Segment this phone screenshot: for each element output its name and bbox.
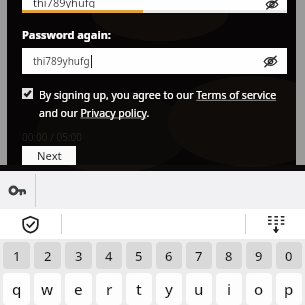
staticText: e: [74, 279, 83, 299]
staticText: 00:00 / 05:00: [22, 130, 83, 144]
staticText: 0: [285, 247, 293, 265]
button[interactable]: thi789yhufg: [22, 48, 287, 74]
staticText: 5: [135, 247, 143, 265]
staticText: 1: [13, 247, 21, 265]
staticText: w: [41, 279, 54, 299]
button[interactable]: 9: [246, 242, 272, 269]
button[interactable]: 3: [65, 242, 92, 269]
staticText: 3: [75, 247, 83, 265]
staticText: Next: [37, 148, 62, 163]
staticText: t: [136, 279, 142, 299]
button[interactable]: Agree to terms checkbox: [22, 88, 33, 99]
button[interactable]: r: [96, 273, 122, 305]
button[interactable]: i: [216, 273, 242, 305]
button[interactable]: Next: [22, 146, 76, 165]
staticText: 2: [44, 247, 52, 265]
button[interactable]: u: [186, 273, 212, 305]
staticText: 7: [195, 247, 203, 265]
button[interactable]: w: [34, 273, 61, 305]
button[interactable]: 1: [3, 242, 30, 269]
staticText: p: [284, 279, 294, 299]
staticText: i: [227, 279, 232, 299]
staticText: 4: [105, 247, 113, 265]
button[interactable]: 5: [126, 242, 152, 269]
button[interactable]: q: [3, 273, 30, 305]
button[interactable]: Hide keyboard: [247, 209, 305, 239]
staticText: 6: [165, 247, 173, 265]
staticText: thi789yhufg: [33, 54, 90, 68]
button[interactable]: 2: [34, 242, 61, 269]
button[interactable]: 4: [96, 242, 122, 269]
staticText: o: [254, 279, 264, 299]
staticText: r: [106, 279, 113, 299]
staticText: q: [12, 279, 22, 299]
staticText: Password again:: [22, 27, 111, 42]
staticText: thi789yhufg: [33, 0, 96, 8]
button[interactable]: 8: [216, 242, 242, 269]
button[interactable]: Secure keyboard: [0, 209, 60, 239]
button[interactable]: Autofill password: [0, 171, 35, 209]
staticText: By signing up, you agree to our Terms of…: [39, 88, 285, 120]
button[interactable]: e: [65, 273, 92, 305]
staticText: 8: [225, 247, 233, 265]
button[interactable]: 0: [276, 242, 302, 269]
button[interactable]: thi789yhufg: [22, 0, 287, 13]
button[interactable]: p: [276, 273, 302, 305]
button[interactable]: y: [156, 273, 182, 305]
button[interactable]: 6: [156, 242, 182, 269]
staticText: y: [165, 279, 173, 299]
staticText: u: [194, 279, 204, 299]
staticText: 9: [255, 247, 263, 265]
button[interactable]: 7: [186, 242, 212, 269]
button[interactable]: o: [246, 273, 272, 305]
button[interactable]: t: [126, 273, 152, 305]
